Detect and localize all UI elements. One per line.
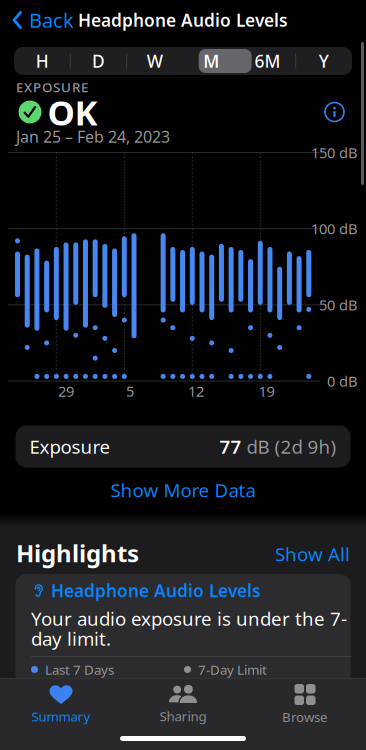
staticText: Show More Data [110, 478, 255, 502]
button[interactable]: Back [12, 7, 74, 33]
staticText: Jan 25 – Feb 24, 2023 [16, 126, 170, 147]
staticText: D [92, 49, 105, 72]
staticText: day limit. [31, 626, 111, 651]
staticText: H [36, 49, 49, 72]
staticText: E X P O S U R E [16, 78, 88, 96]
staticText: 19 [258, 381, 274, 401]
button[interactable]: Sharing [122, 685, 244, 725]
staticText: 6M [254, 49, 280, 72]
staticText: Show All [275, 542, 350, 566]
staticText: Exposure [29, 434, 110, 459]
staticText: 50 dB [319, 295, 358, 315]
button[interactable]: W [127, 47, 183, 75]
staticText: 150 dB [311, 143, 358, 162]
button[interactable]: Browse [244, 684, 366, 726]
staticText: Headphone Audio Levels [78, 8, 288, 31]
staticText: 12 [188, 381, 204, 401]
staticText: 29 [58, 381, 74, 401]
staticText: Browse [282, 708, 328, 726]
staticText: 5 [126, 381, 134, 401]
button[interactable]: D [70, 47, 127, 75]
staticText: Summary [31, 707, 90, 725]
staticText: 77 [219, 434, 241, 459]
button[interactable]: Headphone Audio Levels highlight [15, 574, 350, 686]
button[interactable]: Show All [275, 542, 350, 566]
staticText: dB (2d 9h) [241, 434, 336, 459]
staticText: 0 dB [327, 371, 358, 391]
staticText: Y [319, 49, 329, 72]
staticText: Your audio exposure is under the 7- [31, 606, 347, 631]
staticText: W [147, 49, 163, 72]
button[interactable]: Info [325, 102, 344, 121]
button[interactable]: Show More Data [110, 478, 255, 502]
staticText: Last 7 Days [45, 661, 114, 678]
button[interactable]: 6M [239, 47, 296, 75]
button[interactable]: Summary [0, 684, 122, 725]
staticText: Sharing [159, 707, 206, 725]
button[interactable]: M [183, 47, 239, 75]
button[interactable]: Y [296, 47, 352, 75]
staticText: Highlights [16, 537, 139, 569]
staticText: M [203, 49, 219, 72]
staticText: Headphone Audio Levels [51, 579, 261, 602]
staticText: Back [29, 7, 74, 33]
staticText: 100 dB [311, 219, 358, 238]
staticText: OK [47, 89, 97, 135]
staticText: 7-Day Limit [198, 661, 267, 678]
button[interactable]: H [14, 47, 70, 75]
